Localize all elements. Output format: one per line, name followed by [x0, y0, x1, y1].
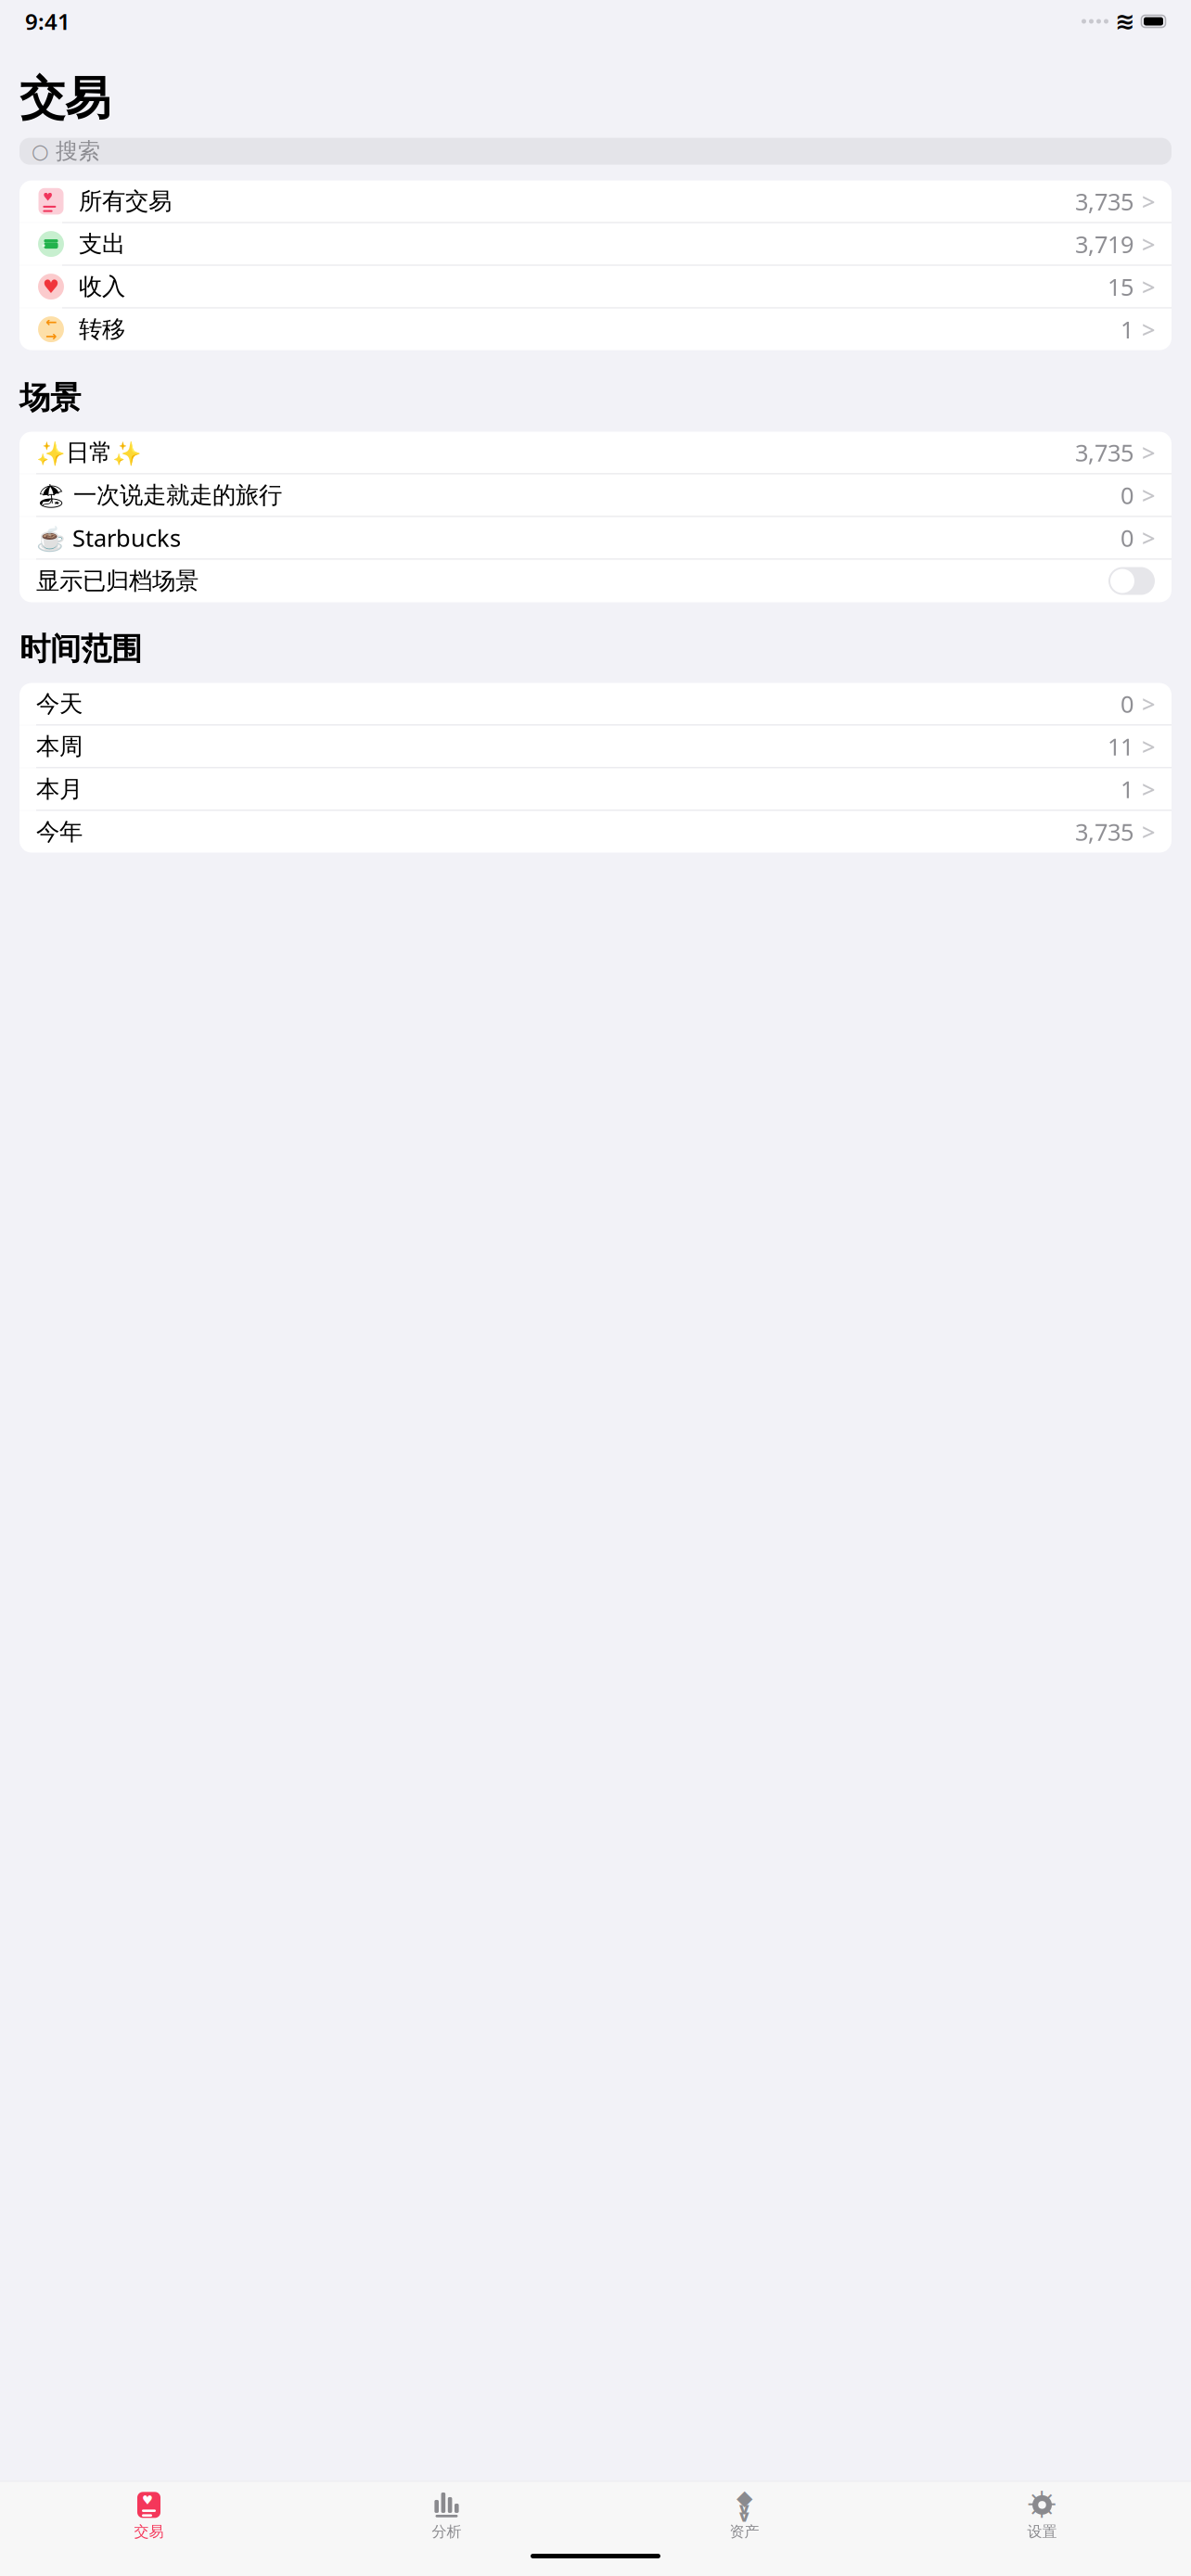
button[interactable]: ✳ — [893, 2484, 1191, 2544]
staticText: ♥ — [142, 2493, 153, 2507]
staticText: 0 — [1121, 522, 1133, 553]
staticText: ✨日常✨ — [36, 438, 142, 467]
button[interactable]: 今年 — [19, 811, 1172, 853]
staticText: 1 — [1121, 314, 1133, 345]
button[interactable]: 显示已归档场景 — [19, 560, 1172, 602]
staticText: 0 — [1121, 688, 1133, 719]
staticText: 15 — [1108, 271, 1133, 302]
staticText: 资产 — [730, 2522, 759, 2541]
staticText: 3,719 — [1075, 228, 1133, 260]
staticText: 交易 — [134, 2522, 164, 2541]
staticText: 0 — [1121, 480, 1133, 511]
staticText: 3,735 — [1075, 437, 1133, 468]
staticText: > — [1142, 731, 1155, 762]
staticText: 3,735 — [1075, 186, 1133, 217]
staticText: v — [739, 2497, 749, 2519]
staticText: > — [1142, 816, 1155, 847]
staticText: > — [1142, 688, 1155, 719]
staticText: ← — [45, 314, 57, 330]
staticText: 显示已归档场景 — [36, 567, 198, 595]
button[interactable]: ♥ — [19, 266, 1172, 307]
staticText: 场景 — [19, 379, 81, 417]
staticText: ♥ — [43, 276, 59, 297]
staticText: > — [1142, 314, 1155, 345]
staticText: 本周 — [36, 732, 83, 761]
button[interactable]: 今天 — [19, 683, 1172, 725]
button[interactable]: ☕️ Starbucks — [19, 517, 1172, 559]
staticText: 9:41 — [25, 7, 70, 36]
staticText: ≋ — [1115, 8, 1134, 35]
staticText: > — [1142, 437, 1155, 468]
button[interactable]: ✨日常✨ — [19, 432, 1172, 473]
staticText: > — [1142, 480, 1155, 511]
staticText: > — [1142, 522, 1155, 553]
staticText: 交易 — [19, 70, 110, 127]
button[interactable]: 分析 — [298, 2484, 595, 2544]
staticText: 🏖 一次说走就走的旅行 — [36, 481, 282, 510]
staticText: 今年 — [36, 817, 83, 846]
staticText: → — [45, 329, 57, 344]
staticText: 设置 — [1027, 2522, 1057, 2541]
staticText: v — [739, 2505, 749, 2526]
staticText: 11 — [1108, 731, 1133, 762]
button[interactable]: ◆ — [595, 2484, 893, 2544]
staticText: 转移 — [79, 315, 125, 344]
staticText: ✳ — [1026, 2484, 1058, 2526]
staticText: ☕️ Starbucks — [36, 522, 181, 553]
staticText: 时间范围 — [19, 630, 142, 668]
staticText: 本月 — [36, 775, 83, 803]
staticText: 分析 — [432, 2522, 461, 2541]
staticText: > — [1142, 228, 1155, 260]
button[interactable]: 本周 — [19, 726, 1172, 767]
staticText: 所有交易 — [79, 187, 172, 216]
button[interactable]: 本月 — [19, 768, 1172, 810]
button[interactable]: 🏖 一次说走就走的旅行 — [19, 474, 1172, 516]
button[interactable]: ♥ — [19, 180, 1172, 222]
button[interactable]: ← — [19, 308, 1172, 350]
staticText: > — [1142, 186, 1155, 217]
staticText: > — [1142, 774, 1155, 805]
button[interactable]: 支出 — [19, 223, 1172, 265]
staticText: > — [1142, 271, 1155, 302]
staticText: 今天 — [36, 689, 83, 718]
button[interactable]: ♥ — [0, 2484, 298, 2544]
staticText: ♥ — [43, 191, 53, 203]
staticText: 搜索 — [56, 138, 100, 165]
staticText: 3,735 — [1075, 816, 1133, 847]
staticText: ◆ — [736, 2486, 752, 2509]
staticText: 收入 — [79, 272, 125, 301]
staticText: 1 — [1121, 774, 1133, 805]
staticText: 支出 — [79, 230, 125, 258]
staticText: ○ — [32, 140, 49, 162]
